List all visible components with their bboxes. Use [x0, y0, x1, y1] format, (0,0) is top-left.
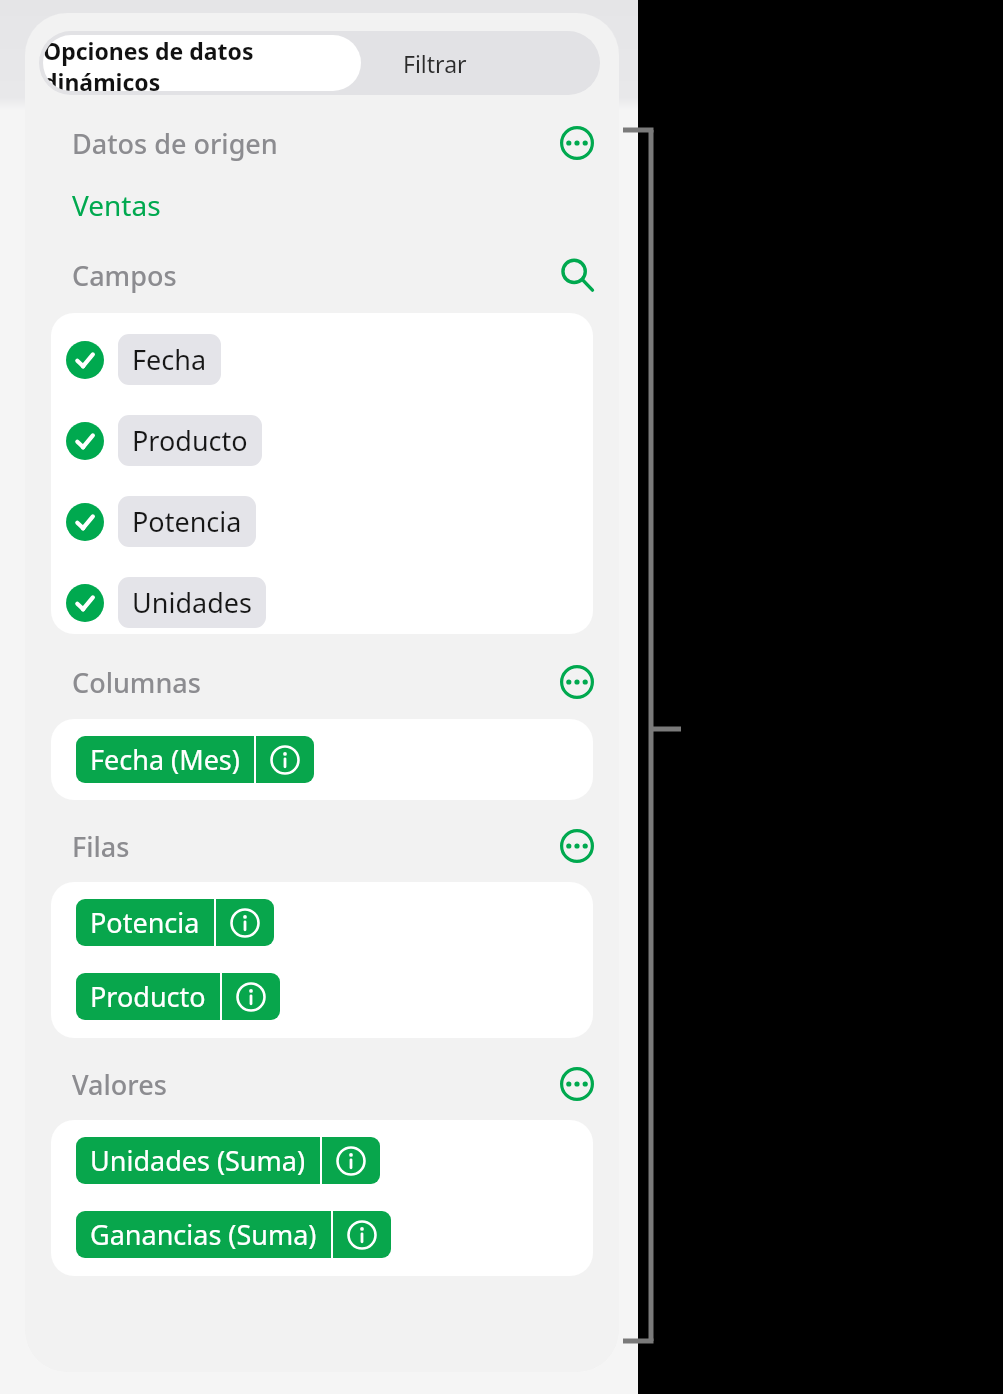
button[interactable]: Información sobre Unidades (Suma): [322, 1137, 380, 1184]
button[interactable]: Ganancias (Suma): [76, 1211, 391, 1258]
staticText: Valores: [72, 1066, 167, 1103]
button[interactable]: Información sobre Producto: [222, 973, 280, 1020]
button[interactable]: Producto: [76, 973, 280, 1020]
button[interactable]: Opciones de datos dinámicos: [43, 35, 361, 91]
button[interactable]: Más opciones de Datos de origen: [555, 121, 599, 165]
staticText: Unidades (Suma): [90, 1142, 306, 1179]
staticText: Potencia: [132, 503, 242, 540]
staticText: Producto: [90, 978, 206, 1015]
staticText: Fecha (Mes): [90, 741, 240, 778]
staticText: Unidades: [132, 584, 252, 621]
staticText: Columnas: [72, 664, 201, 701]
staticText: Filtrar: [403, 48, 467, 79]
button[interactable]: Filtrar: [365, 31, 600, 95]
staticText: Ganancias (Suma): [90, 1216, 317, 1253]
button[interactable]: Ventas: [72, 186, 161, 224]
staticText: Datos de origen: [72, 125, 278, 162]
button[interactable]: Información sobre Fecha (Mes): [256, 736, 314, 783]
staticText: Opciones de datos dinámicos: [43, 35, 361, 91]
button[interactable]: Producto: [51, 415, 593, 466]
staticText: Producto: [132, 422, 248, 459]
staticText: Ventas: [72, 186, 161, 224]
staticText: Fecha: [132, 341, 207, 378]
staticText: Potencia: [90, 904, 200, 941]
button[interactable]: Más opciones de Filas: [555, 824, 599, 868]
staticText: Campos: [72, 257, 177, 294]
button[interactable]: Potencia: [76, 899, 274, 946]
button[interactable]: Más opciones de Columnas: [555, 660, 599, 704]
button[interactable]: Buscar campos: [555, 253, 599, 297]
button[interactable]: Fecha (Mes): [76, 736, 314, 783]
button[interactable]: Información sobre Potencia: [216, 899, 274, 946]
button[interactable]: Unidades (Suma): [76, 1137, 380, 1184]
button[interactable]: Potencia: [51, 496, 593, 547]
button[interactable]: Unidades: [51, 577, 593, 628]
button[interactable]: Fecha: [51, 334, 593, 385]
button[interactable]: Más opciones de Valores: [555, 1062, 599, 1106]
staticText: Filas: [72, 828, 130, 865]
button[interactable]: Información sobre Ganancias (Suma): [333, 1211, 391, 1258]
